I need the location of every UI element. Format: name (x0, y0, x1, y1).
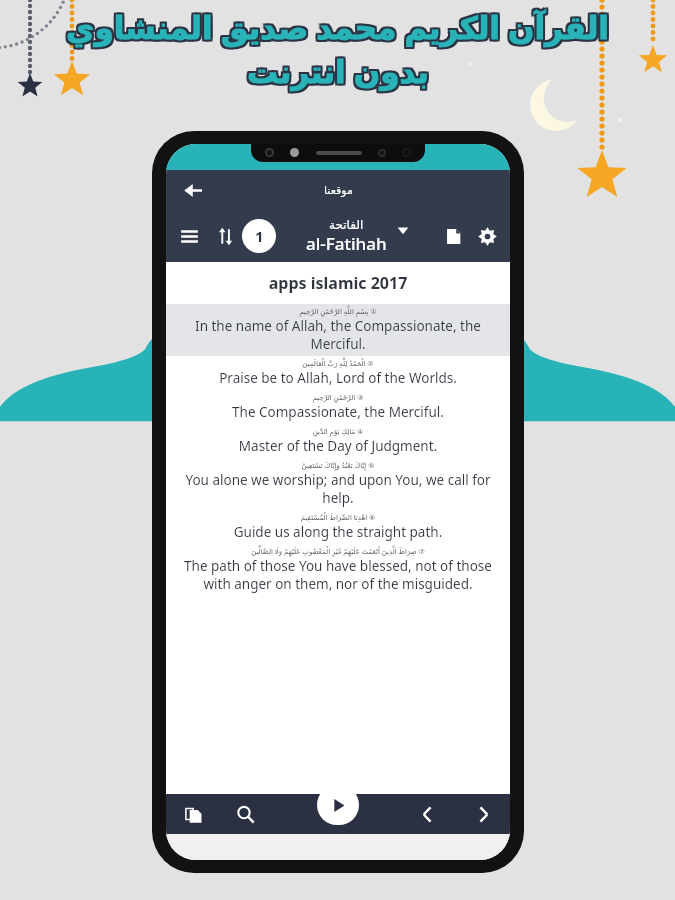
staticText: بدون انترنت (245, 50, 427, 92)
staticText: Guide us along the straight path. (172, 523, 504, 541)
button[interactable]: صِرَاطَ الَّذِينَ أَنْعَمْتَ عَلَيْهِمْ … (166, 544, 510, 596)
staticText: مَالِكِ يَوْمِ الدِّينِ ④ (172, 427, 504, 437)
staticText: القرآن الكريم محمد صديق المنشاوي (64, 4, 607, 46)
staticText: apps islamic 2017 (166, 272, 510, 294)
staticText: القرآن الكريم محمد صديق المنشاوي (66, 8, 609, 50)
button[interactable]: إِيَّاكَ نَعْبُدُ وَإِيَّاكَ نَسْتَعِينُ… (166, 458, 510, 510)
button[interactable]: Next (468, 799, 498, 829)
staticText: الفاتحة (329, 218, 364, 232)
staticText: al-Fatihah (306, 232, 387, 255)
staticText: The Compassionate, the Merciful. (172, 403, 504, 421)
staticText: إِيَّاكَ نَعْبُدُ وَإِيَّاكَ نَسْتَعِينُ… (172, 461, 504, 471)
button[interactable]: Menu (174, 221, 204, 251)
button[interactable]: Page (438, 221, 468, 251)
button[interactable]: الفاتحة (276, 218, 438, 255)
button[interactable]: Settings (472, 221, 502, 251)
button[interactable]: Copy (178, 799, 208, 829)
staticText: موقعنا (324, 184, 353, 197)
button[interactable]: مَالِكِ يَوْمِ الدِّينِ ④ (166, 424, 510, 458)
button[interactable]: Play (317, 785, 359, 825)
staticText: بدون انترنت (247, 50, 429, 92)
staticText: بدون انترنت (249, 50, 431, 92)
staticText: بدون انترنت (247, 52, 429, 94)
staticText: بدون انترنت (245, 48, 427, 90)
staticText: القرآن الكريم محمد صديق المنشاوي (64, 6, 607, 48)
staticText: القرآن الكريم محمد صديق المنشاوي (68, 8, 611, 50)
button[interactable]: الرَّحْمَٰنِ الرَّحِيمِ ③ (166, 390, 510, 424)
staticText: القرآن الكريم محمد صديق المنشاوي (68, 6, 611, 48)
staticText: You alone we worship; and upon You, we c… (172, 471, 504, 507)
button[interactable]: Search (230, 799, 260, 829)
staticText: Praise be to Allah, Lord of the Worlds. (172, 369, 504, 387)
staticText: الْحَمْدُ لِلَّهِ رَبِّ الْعَالَمِينَ ② (172, 359, 504, 369)
staticText: In the name of Allah, the Compassionate,… (172, 317, 504, 353)
button[interactable]: اهْدِنَا الصِّرَاطَ الْمُسْتَقِيمَ ⑥ (166, 510, 510, 544)
button[interactable]: Back (178, 175, 208, 205)
staticText: بدون انترنت (247, 48, 429, 90)
staticText: 1 (255, 226, 264, 246)
staticText: بدون انترنت (249, 48, 431, 90)
staticText: القرآن الكريم محمد صديق المنشاوي (64, 8, 607, 50)
staticText: القرآن الكريم محمد صديق المنشاوي (66, 4, 609, 46)
button[interactable]: 1 (242, 219, 276, 253)
staticText: صِرَاطَ الَّذِينَ أَنْعَمْتَ عَلَيْهِمْ … (172, 547, 504, 557)
staticText: بِسْمِ اللَّهِ الرَّحْمَٰنِ الرَّحِيمِ ① (172, 307, 504, 317)
staticText: القرآن الكريم محمد صديق المنشاوي (66, 6, 609, 48)
button[interactable]: الْحَمْدُ لِلَّهِ رَبِّ الْعَالَمِينَ ② (166, 356, 510, 390)
staticText: Master of the Day of Judgment. (172, 437, 504, 455)
staticText: بدون انترنت (245, 52, 427, 94)
staticText: اهْدِنَا الصِّرَاطَ الْمُسْتَقِيمَ ⑥ (172, 513, 504, 523)
button[interactable]: بِسْمِ اللَّهِ الرَّحْمَٰنِ الرَّحِيمِ ① (166, 304, 510, 356)
staticText: الرَّحْمَٰنِ الرَّحِيمِ ③ (172, 393, 504, 403)
staticText: The path of those You have blessed, not … (172, 557, 504, 593)
button[interactable]: Previous (412, 799, 442, 829)
button[interactable]: Sort (210, 221, 240, 251)
staticText: بدون انترنت (249, 52, 431, 94)
staticText: القرآن الكريم محمد صديق المنشاوي (68, 4, 611, 46)
